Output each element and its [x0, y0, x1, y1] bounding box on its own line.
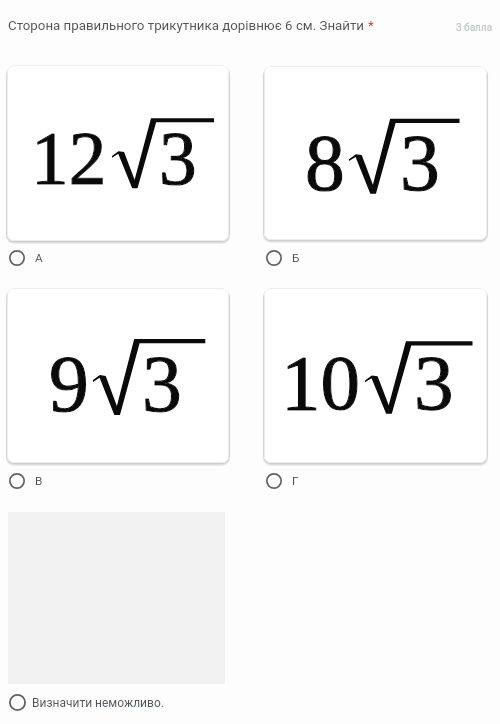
staticText: 9	[49, 340, 89, 428]
button[interactable]: Select option Визначити неможливо	[9, 694, 164, 711]
staticText: 12	[31, 117, 107, 200]
staticText: 3 балла	[456, 22, 493, 34]
button[interactable]: Select option Г	[266, 473, 299, 489]
staticText: 3	[400, 119, 440, 207]
other: Select option Г	[266, 473, 282, 489]
staticText: 3	[414, 339, 454, 426]
staticText: Б	[292, 251, 300, 265]
button[interactable]: Select option В	[9, 473, 43, 489]
staticText: 8	[305, 119, 345, 207]
staticText: 12	[31, 117, 107, 200]
other: Select option В	[9, 473, 25, 489]
staticText: 3	[142, 340, 182, 428]
staticText: *	[368, 18, 374, 34]
staticText: Визначити неможливо.	[32, 696, 164, 710]
staticText: 3	[159, 117, 197, 200]
staticText: Г	[292, 474, 299, 488]
staticText: 3	[414, 339, 454, 426]
staticText: Сторона правильного трикутника дорівнює …	[8, 18, 368, 34]
staticText: А	[35, 251, 43, 265]
staticText: 3	[142, 340, 182, 428]
staticText: 8	[305, 119, 345, 207]
staticText: 10	[281, 339, 360, 426]
other: Select option Б	[266, 250, 282, 266]
staticText: 3	[159, 117, 197, 200]
staticText: 10	[281, 339, 360, 426]
staticText: 3	[400, 119, 440, 207]
other: Select option А	[9, 250, 25, 266]
staticText: В	[35, 474, 43, 488]
button[interactable]: Select option Б	[266, 250, 300, 266]
staticText: 9	[49, 340, 89, 428]
other: Select option Визначити неможливо	[9, 694, 26, 711]
button[interactable]: Select option А	[9, 250, 43, 266]
